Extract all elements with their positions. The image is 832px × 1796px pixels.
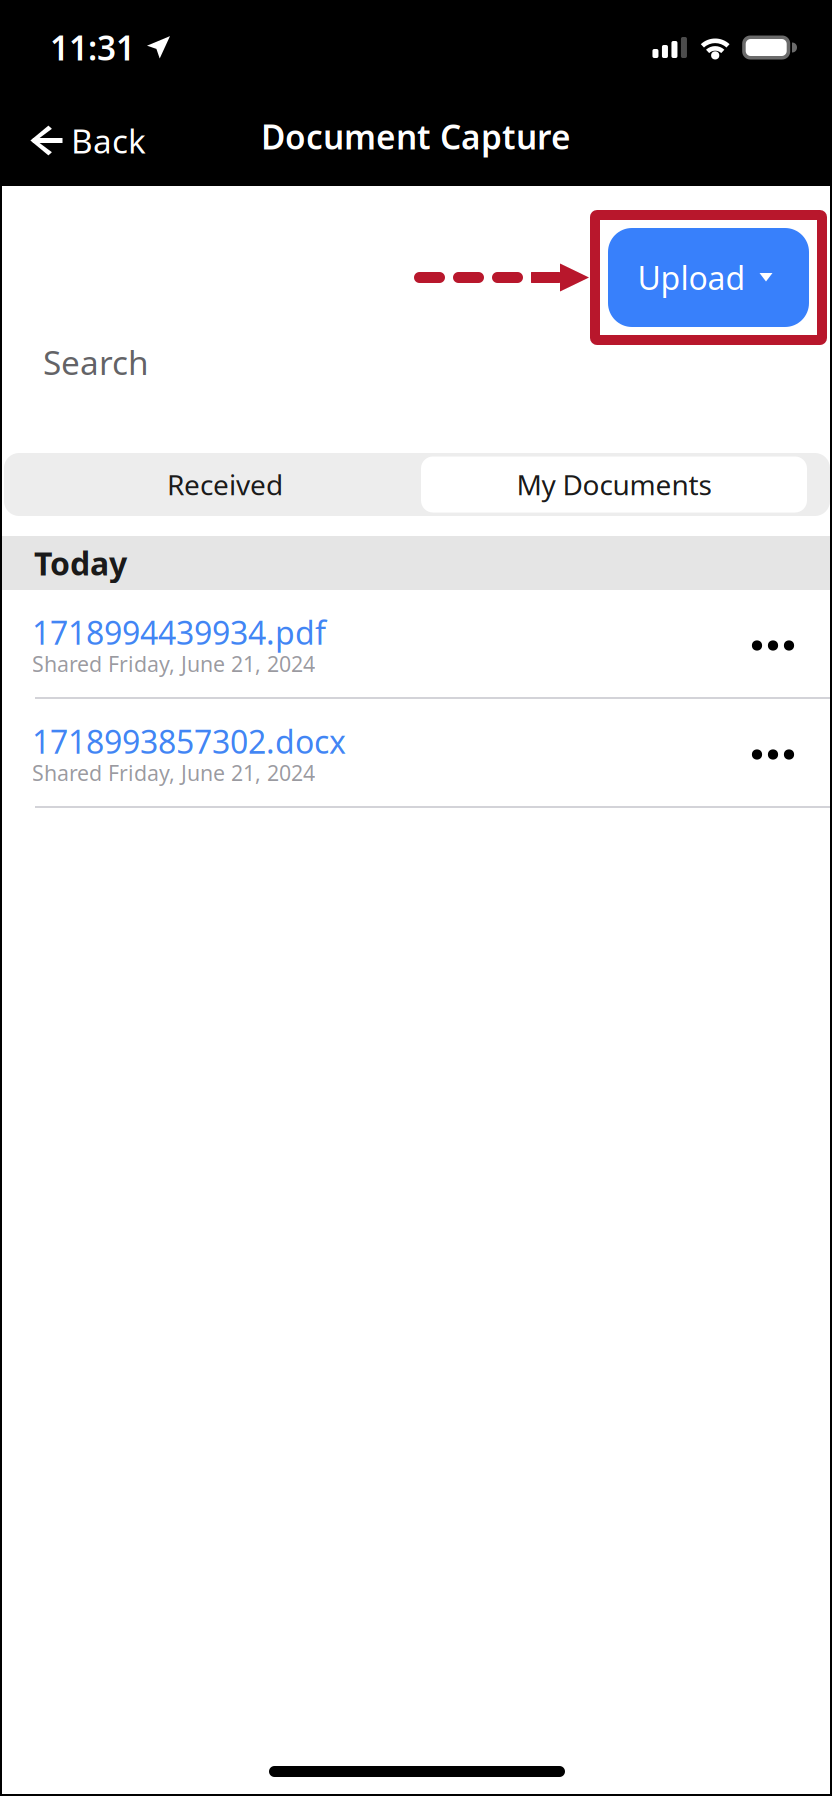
staticText: My Documents <box>516 466 711 503</box>
staticText: 1718993857302.docx <box>32 720 346 762</box>
staticText: 11:31 <box>50 25 135 70</box>
button[interactable]: Received <box>4 453 421 516</box>
staticText: Received <box>167 466 283 503</box>
staticText: 1718994439934.pdf <box>32 611 326 653</box>
button[interactable]: Back <box>16 104 160 177</box>
staticText: Back <box>71 118 146 163</box>
staticText: Today <box>34 542 127 584</box>
button[interactable]: Upload <box>608 228 809 327</box>
staticText: Upload <box>637 256 745 299</box>
button[interactable]: More options for 1718993857302.docx <box>733 723 813 786</box>
staticText: Shared Friday, June 21, 2024 <box>32 649 315 678</box>
staticText: Document Capture <box>261 114 571 159</box>
staticText: Shared Friday, June 21, 2024 <box>32 758 315 787</box>
staticText: Search <box>43 340 149 384</box>
button[interactable]: More options for 1718994439934.pdf <box>733 614 813 677</box>
button[interactable]: My Documents <box>421 453 830 516</box>
